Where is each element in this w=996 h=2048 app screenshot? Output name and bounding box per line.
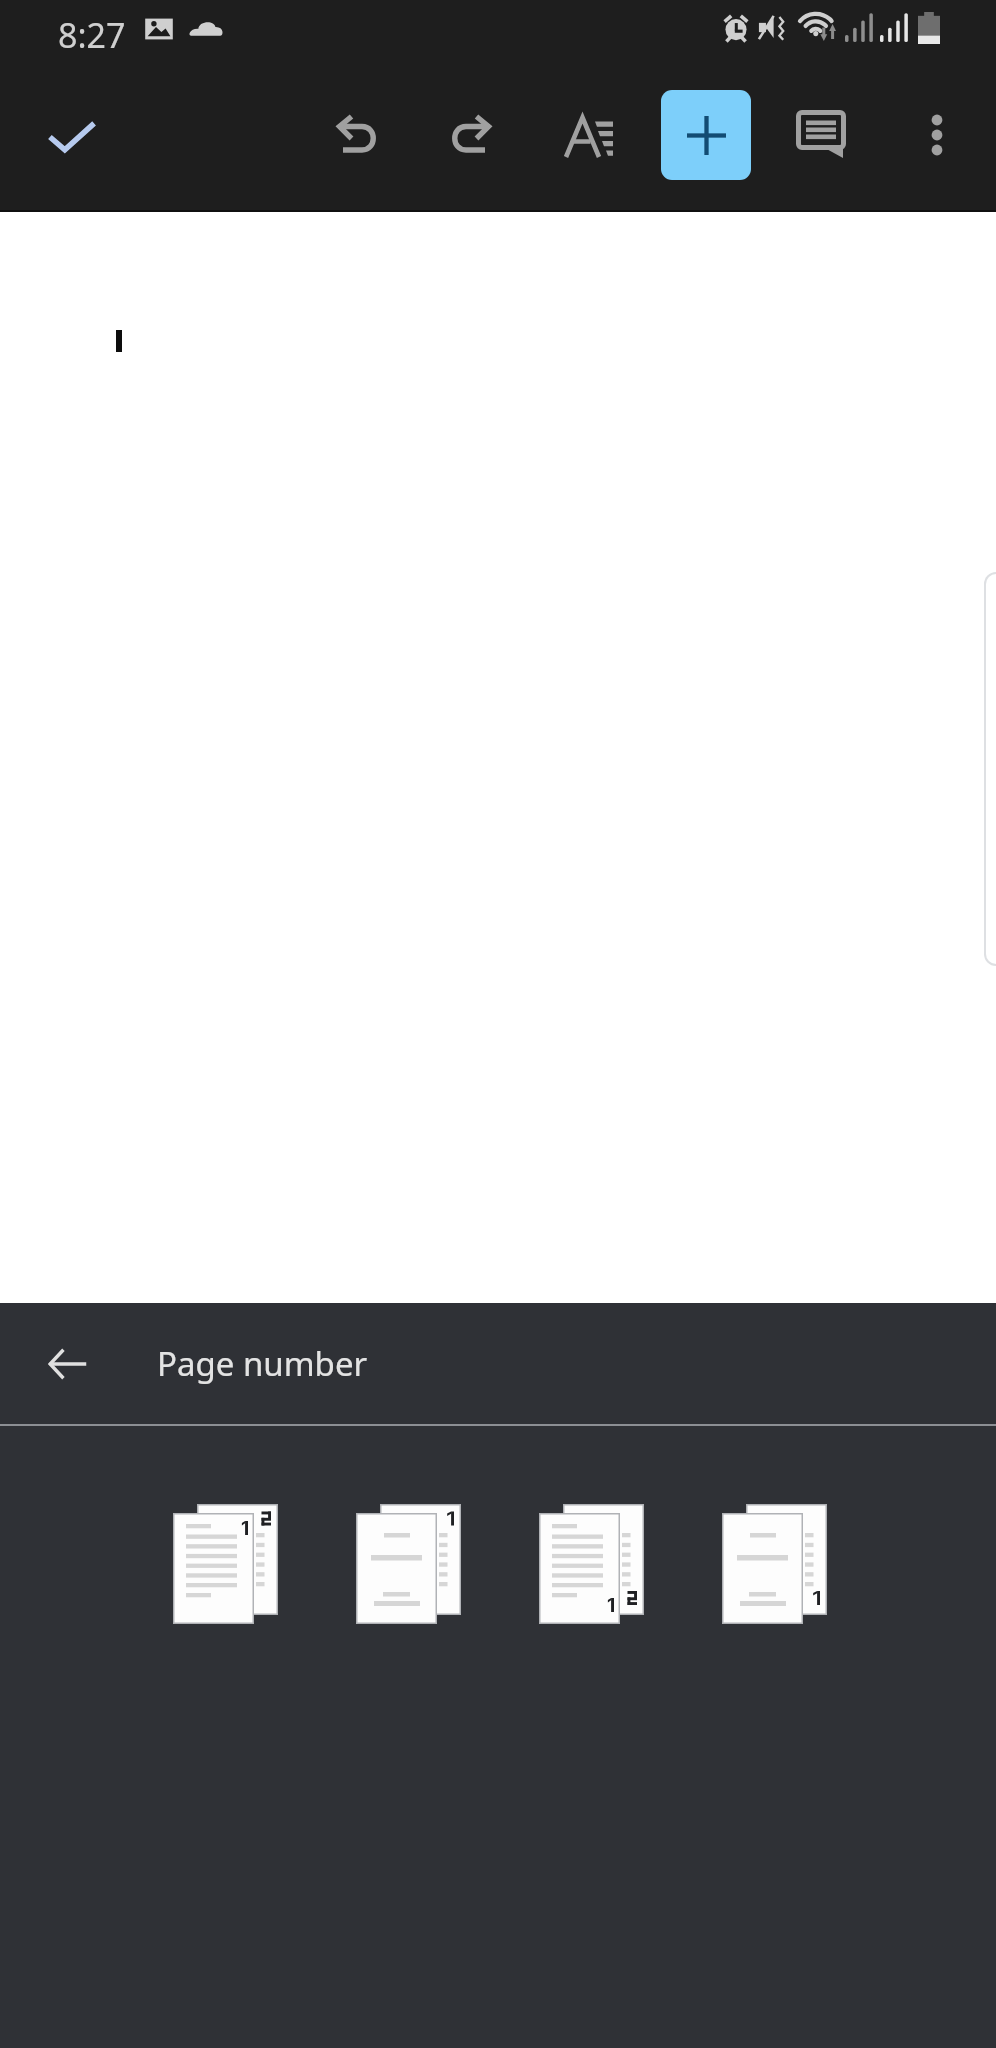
button[interactable]: Undo xyxy=(308,89,408,189)
button[interactable]: Comments xyxy=(770,86,870,186)
button[interactable]: Insert xyxy=(661,90,751,180)
button[interactable]: Page number layout option xyxy=(539,1504,647,1626)
staticText: 8:27 xyxy=(58,12,126,58)
button[interactable]: Back xyxy=(26,1322,110,1406)
button[interactable]: Text formatting xyxy=(538,90,638,190)
button[interactable]: Page number layout option xyxy=(173,1504,281,1626)
button[interactable]: Redo xyxy=(420,89,520,189)
button[interactable]: Page number layout option xyxy=(722,1504,830,1626)
staticText: Page number xyxy=(157,1341,368,1386)
button[interactable]: Done xyxy=(22,89,122,189)
button[interactable]: Page number layout option xyxy=(356,1504,464,1626)
button[interactable]: More options xyxy=(887,85,987,185)
